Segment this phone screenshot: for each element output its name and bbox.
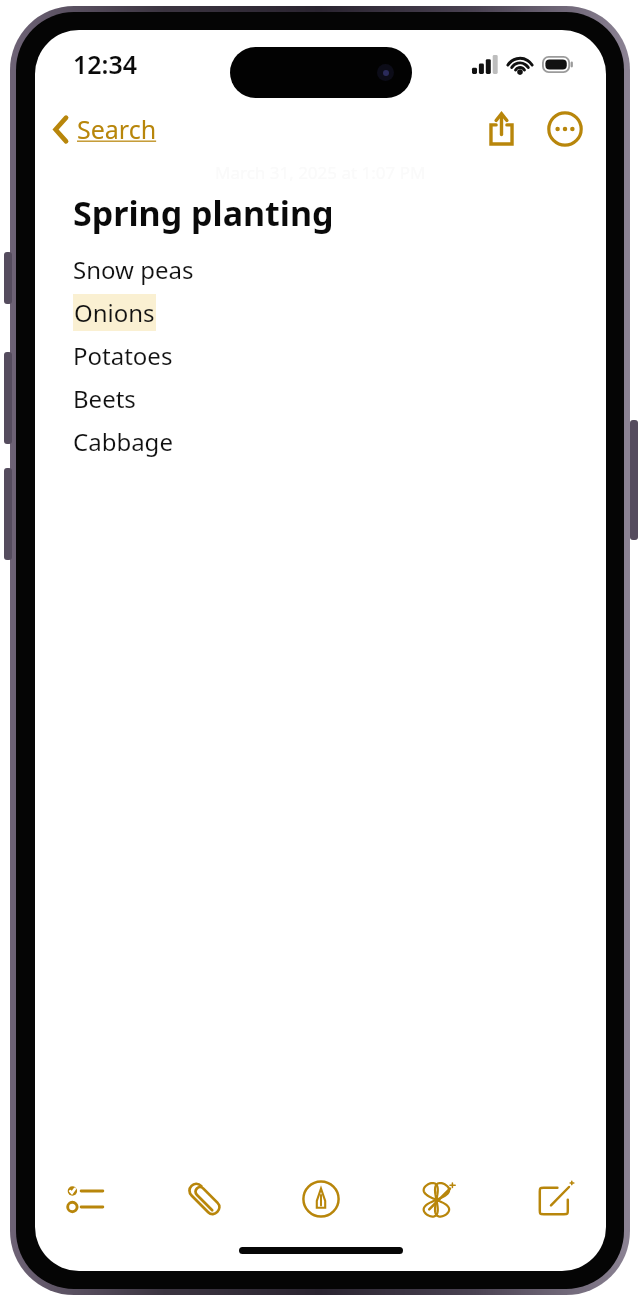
button[interactable]: Potatoes [35, 334, 606, 377]
button[interactable]: Snow peas [35, 248, 606, 291]
button[interactable]: Beets [35, 377, 606, 420]
button[interactable]: Checklist [57, 1170, 115, 1228]
staticText: Potatoes [73, 339, 173, 372]
button[interactable]: Onions [35, 291, 606, 334]
button[interactable]: New note [526, 1170, 584, 1228]
staticText: Search [77, 112, 157, 146]
staticText: Spring planting [73, 190, 334, 236]
staticText: Onions [74, 296, 155, 329]
staticText: Snow peas [73, 253, 194, 286]
button[interactable]: Markup [292, 1170, 350, 1228]
button[interactable]: Search [47, 106, 163, 152]
button[interactable]: Share [478, 106, 524, 152]
staticText: Beets [73, 382, 136, 415]
staticText: 12:34 [73, 47, 138, 81]
staticText: Cabbage [73, 425, 173, 458]
button[interactable]: Apple Intelligence [409, 1170, 467, 1228]
button[interactable]: More options [542, 106, 588, 152]
button[interactable]: Cabbage [35, 420, 606, 463]
button[interactable]: Attach file [174, 1170, 232, 1228]
